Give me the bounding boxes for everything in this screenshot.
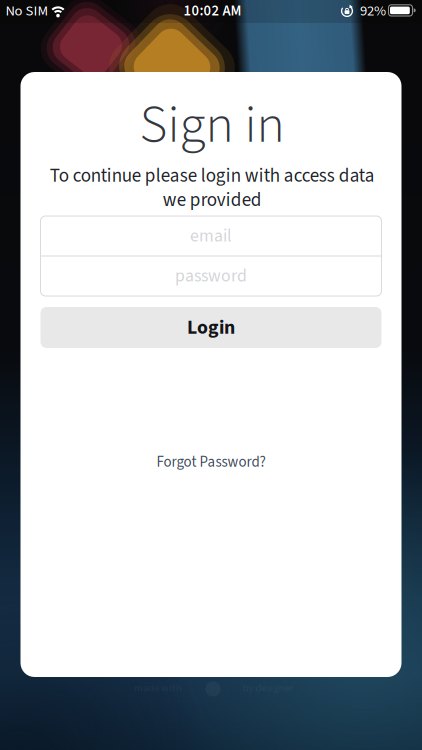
- button[interactable]: Login: [40, 307, 381, 348]
- staticText: password: [175, 263, 247, 289]
- staticText: made with: [134, 680, 182, 696]
- button[interactable]: email: [41, 216, 380, 255]
- button[interactable]: Forgot Password?: [148, 445, 273, 479]
- staticText: To continue please login with access dat…: [49, 162, 374, 214]
- staticText: 92%: [360, 1, 386, 21]
- button[interactable]: password: [41, 256, 380, 295]
- staticText: Forgot Password?: [156, 451, 265, 473]
- staticText: 10:02 AM: [183, 1, 241, 21]
- staticText: Login: [187, 313, 235, 341]
- staticText: No SIM: [5, 1, 48, 21]
- staticText: email: [190, 223, 232, 249]
- staticText: Sign in: [139, 87, 284, 163]
